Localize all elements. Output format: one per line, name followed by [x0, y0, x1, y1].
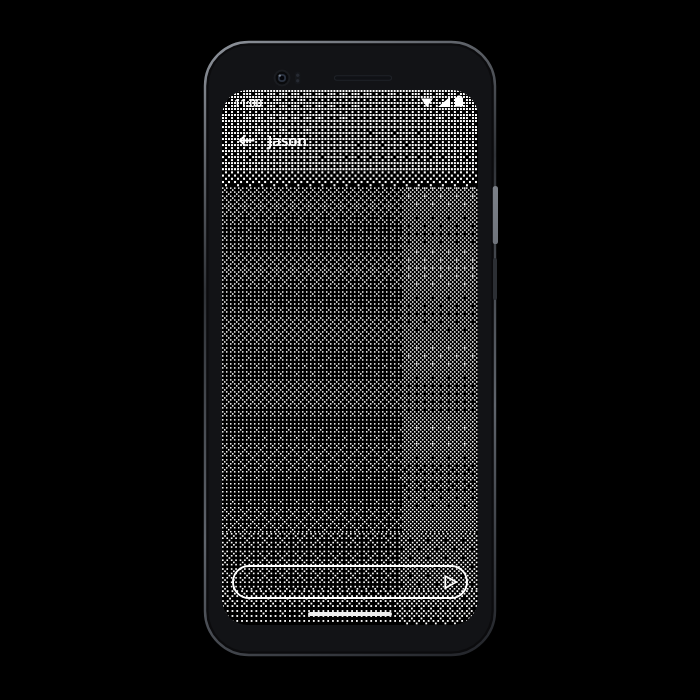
button[interactable]: Back [230, 124, 262, 156]
button[interactable]: Send [437, 569, 463, 595]
staticText: 11:00 [234, 95, 263, 110]
button[interactable]: Send [232, 565, 468, 599]
staticText: Jason [268, 130, 307, 150]
